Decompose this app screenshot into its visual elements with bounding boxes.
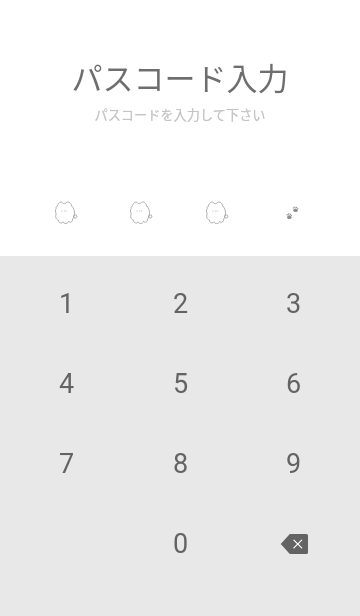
- button[interactable]: 2: [124, 264, 237, 344]
- staticText: 5: [173, 368, 189, 400]
- button[interactable]: 4: [10, 344, 124, 424]
- button[interactable]: 6: [237, 344, 350, 424]
- button[interactable]: 3: [237, 264, 350, 344]
- button[interactable]: 0: [124, 504, 237, 584]
- staticText: パスコードを入力して下さい: [0, 105, 360, 124]
- button[interactable]: 1: [10, 264, 124, 344]
- button[interactable]: 8: [124, 424, 237, 504]
- button[interactable]: Backspace: [237, 504, 350, 584]
- staticText: 6: [286, 368, 302, 400]
- staticText: パスコード入力: [0, 54, 360, 99]
- staticText: 9: [286, 448, 302, 480]
- staticText: 4: [59, 368, 75, 400]
- button[interactable]: 7: [10, 424, 124, 504]
- staticText: 3: [286, 288, 302, 320]
- button[interactable]: 9: [237, 424, 350, 504]
- staticText: 0: [173, 528, 189, 560]
- staticText: 8: [173, 448, 189, 480]
- staticText: 1: [59, 288, 75, 320]
- button[interactable]: 5: [124, 344, 237, 424]
- staticText: 7: [59, 448, 75, 480]
- staticText: 2: [173, 288, 189, 320]
